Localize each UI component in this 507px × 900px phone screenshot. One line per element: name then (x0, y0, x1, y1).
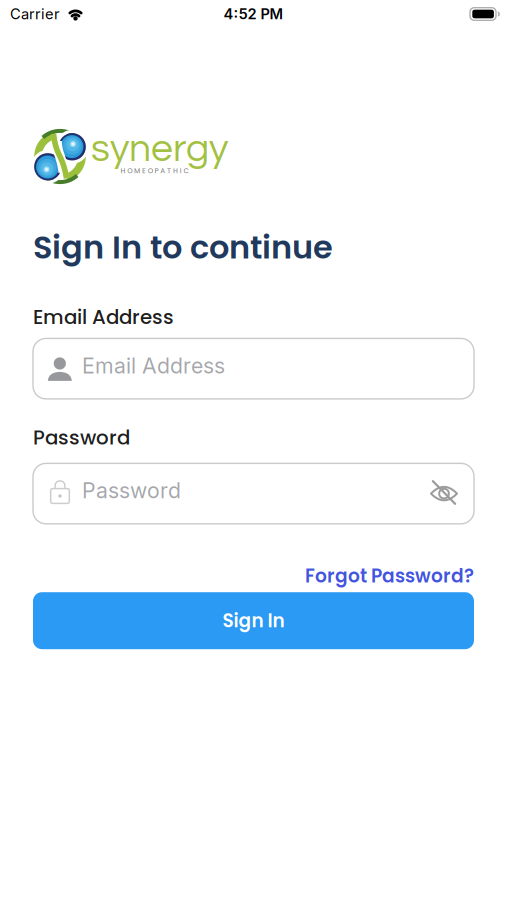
staticText: Sign In to continue (33, 225, 333, 270)
staticText: Forgot Password? (305, 563, 474, 589)
staticText: Email Address (33, 303, 174, 331)
button[interactable]: Show password (430, 480, 458, 508)
staticText: synergy (91, 129, 228, 169)
staticText: Sign In (222, 608, 284, 634)
staticText: Carrier (10, 5, 60, 23)
staticText: Email Address (82, 353, 225, 378)
staticText: Password (82, 478, 181, 503)
staticText: Password (33, 424, 130, 451)
staticText: 4:52 PM (223, 5, 283, 23)
button[interactable]: Forgot Password? (305, 563, 474, 589)
staticText: HOMEOPATHIC (120, 166, 188, 176)
button[interactable]: Sign In (33, 592, 474, 649)
